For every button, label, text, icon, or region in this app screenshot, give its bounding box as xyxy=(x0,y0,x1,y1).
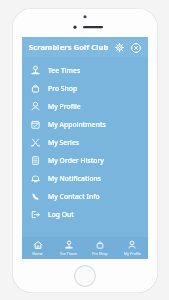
staticText: Pro Shop xyxy=(92,251,108,256)
staticText: Scramblers Golf Club xyxy=(29,42,109,52)
button[interactable]: Close xyxy=(129,41,142,54)
button[interactable]: Pro Shop xyxy=(22,79,148,97)
button[interactable]: My Appointments xyxy=(22,115,148,133)
staticText: My Appointments xyxy=(48,120,106,129)
button[interactable]: Pro Shop xyxy=(84,237,116,259)
button[interactable]: Home xyxy=(22,237,53,259)
button[interactable]: My Notifications xyxy=(22,169,148,187)
staticText: Home xyxy=(32,251,43,256)
button[interactable]: Log Out xyxy=(22,205,148,223)
button[interactable]: My Order History xyxy=(22,151,148,169)
staticText: My Notifications xyxy=(48,174,102,183)
staticText: My Profile xyxy=(124,251,141,256)
button[interactable]: My Contact Info xyxy=(22,187,148,205)
staticText: My Order History xyxy=(48,156,104,165)
button[interactable]: My Profile xyxy=(116,237,148,259)
button[interactable]: My Profile xyxy=(22,97,148,115)
button[interactable]: Home button xyxy=(74,265,96,287)
staticText: Tee Times xyxy=(48,66,81,75)
button[interactable]: My Series xyxy=(22,133,148,151)
staticText: Tee Times xyxy=(60,251,77,256)
staticText: Log Out xyxy=(48,210,74,219)
button[interactable]: Tee Times xyxy=(53,237,84,259)
staticText: My Profile xyxy=(48,102,81,111)
staticText: My Series xyxy=(48,138,80,147)
staticText: My Contact Info xyxy=(48,192,100,201)
button[interactable]: Settings xyxy=(113,41,126,54)
staticText: Pro Shop xyxy=(48,84,78,93)
button[interactable]: Tee Times xyxy=(22,61,148,79)
